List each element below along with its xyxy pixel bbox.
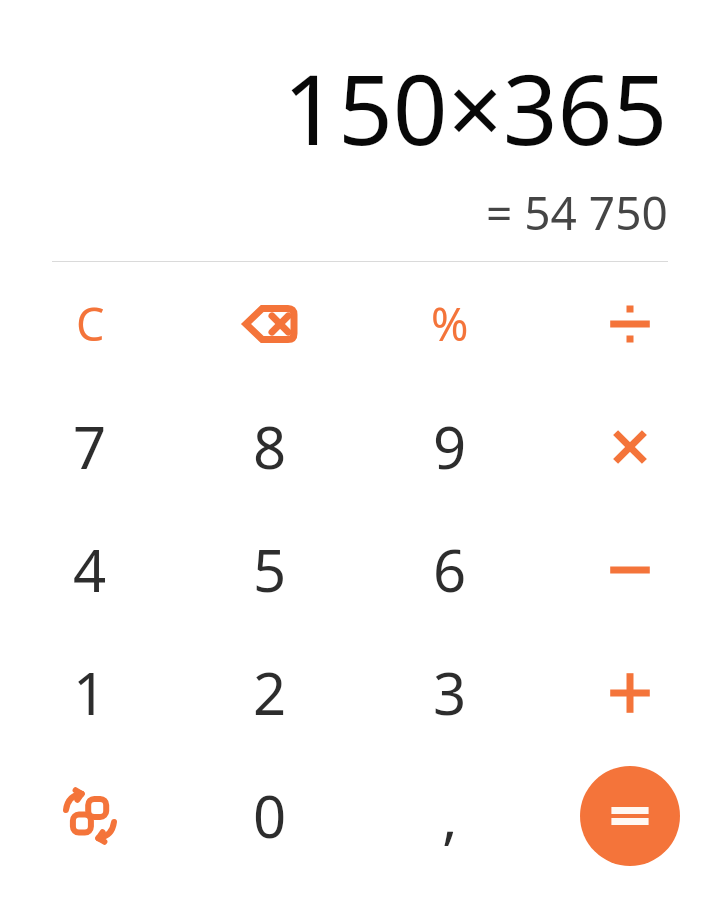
staticText: 3 [433, 653, 467, 732]
staticText: 0 [253, 776, 287, 855]
button[interactable]: Multiply [540, 385, 720, 508]
button[interactable]: Equals [580, 766, 680, 866]
staticText: 6 [433, 530, 467, 609]
button[interactable]: 2 [180, 631, 360, 754]
button[interactable]: % [360, 262, 540, 385]
staticText: % [431, 293, 469, 354]
button[interactable]: Backspace [180, 262, 360, 385]
button[interactable]: 0 [180, 754, 360, 877]
button[interactable]: 1 [0, 631, 180, 754]
button[interactable]: , [360, 754, 540, 877]
staticText: 4 [73, 530, 107, 609]
staticText: = 54 750 [486, 181, 668, 244]
staticText: 8 [253, 407, 287, 486]
button[interactable]: 6 [360, 508, 540, 631]
staticText: 1 [73, 653, 107, 732]
button[interactable]: Plus [540, 631, 720, 754]
staticText: C [76, 293, 105, 354]
button[interactable]: 8 [180, 385, 360, 508]
button[interactable]: 7 [0, 385, 180, 508]
staticText: 5 [253, 530, 287, 609]
staticText: 9 [433, 407, 467, 486]
button[interactable]: Divide [540, 262, 720, 385]
staticText: 150×365 [283, 42, 668, 173]
staticText: , [442, 776, 458, 855]
button[interactable]: 5 [180, 508, 360, 631]
button[interactable]: Minus [540, 508, 720, 631]
button[interactable]: 9 [360, 385, 540, 508]
button[interactable]: 3 [360, 631, 540, 754]
button[interactable]: 4 [0, 508, 180, 631]
button[interactable]: C [0, 262, 180, 385]
staticText: 2 [253, 653, 287, 732]
staticText: 7 [73, 407, 107, 486]
button[interactable]: Convert [0, 754, 180, 877]
